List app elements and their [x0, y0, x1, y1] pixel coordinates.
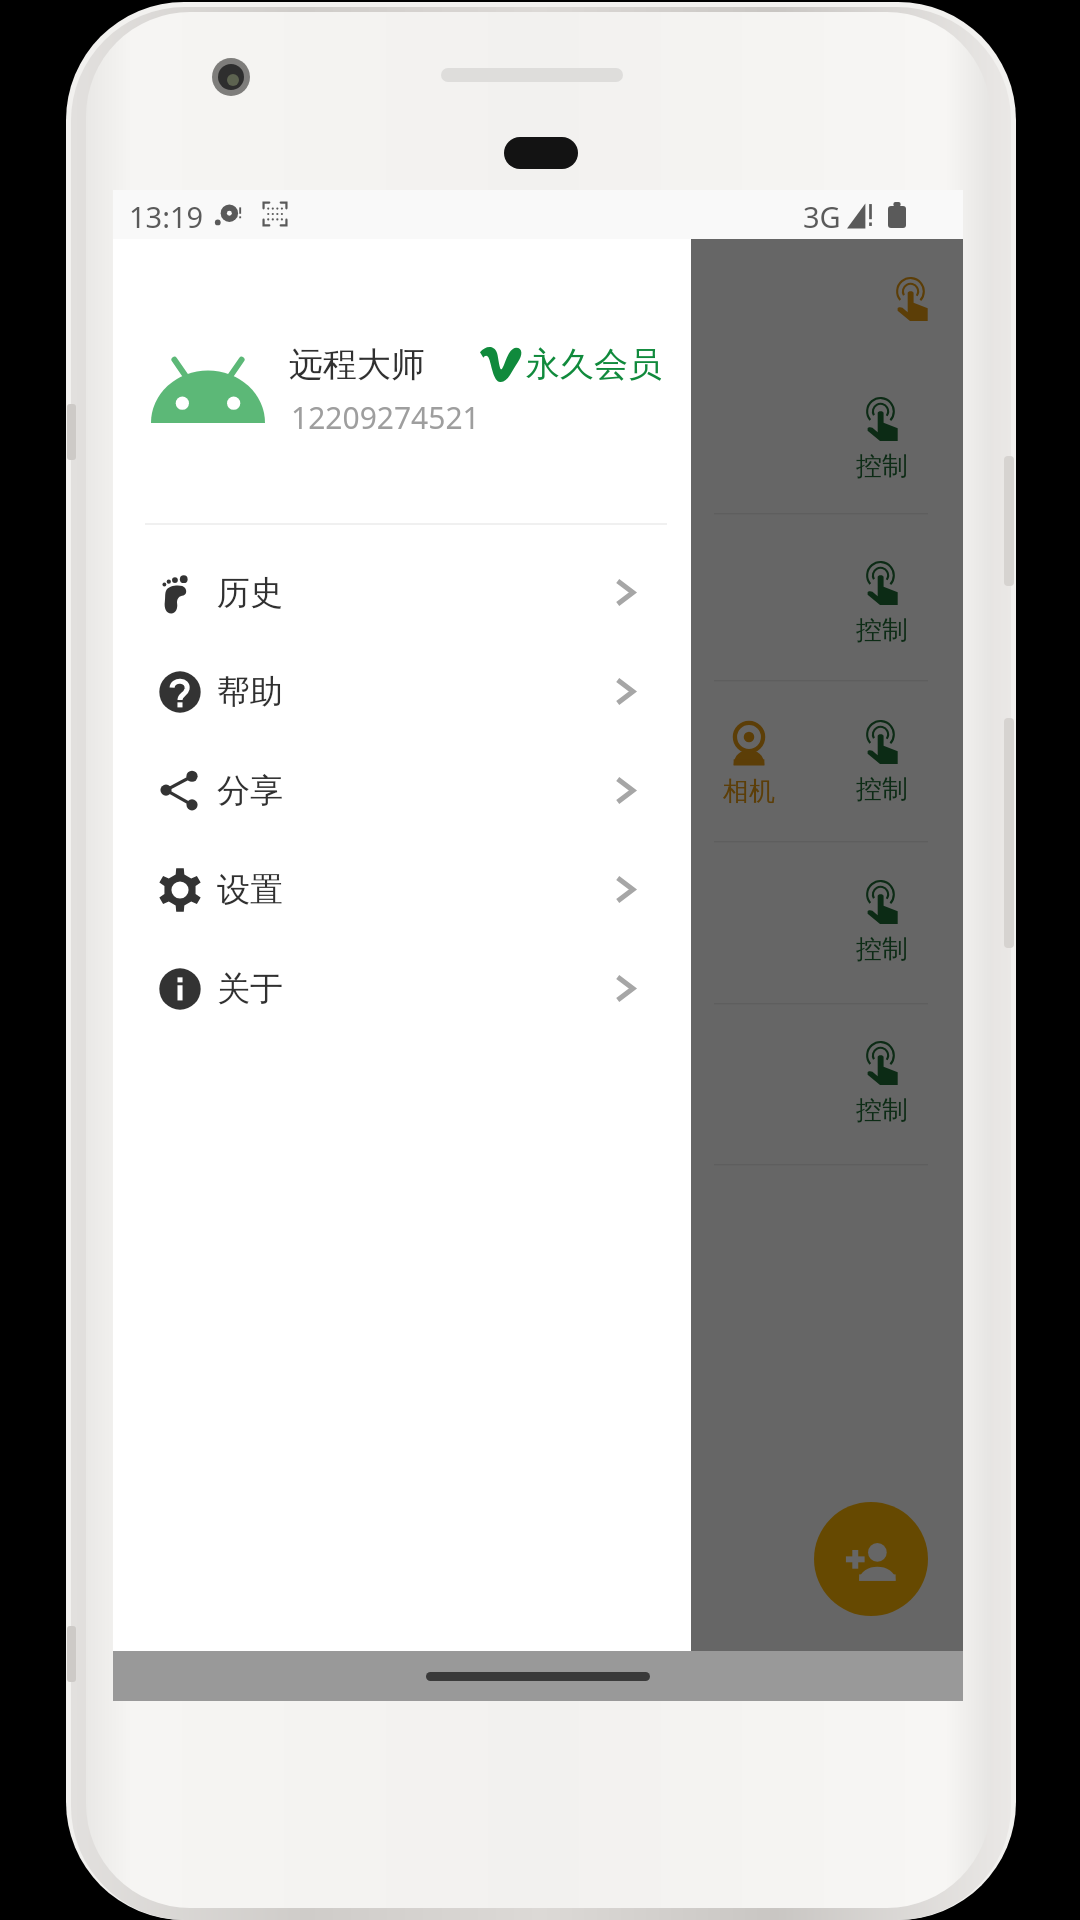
staticText: 控制	[856, 773, 908, 806]
button[interactable]: 帮助	[113, 642, 691, 741]
button[interactable]: 历史	[113, 543, 691, 642]
button[interactable]: 相机	[723, 723, 775, 808]
staticText: 相机	[723, 775, 775, 808]
staticText: 分享	[217, 770, 283, 812]
staticText: 控制	[856, 614, 908, 647]
button[interactable]: 控制	[856, 563, 908, 647]
staticText: 控制	[856, 450, 908, 483]
button[interactable]: 控制	[856, 1043, 908, 1127]
staticText: 3G	[803, 197, 841, 236]
staticText: 帮助	[217, 671, 283, 713]
staticText: 关于	[217, 968, 283, 1010]
button[interactable]: 远程控制	[897, 279, 928, 321]
button[interactable]: 分享	[113, 741, 691, 840]
button[interactable]	[113, 295, 691, 490]
button[interactable]: 设置	[113, 840, 691, 939]
staticText: 永久会员	[526, 343, 662, 386]
staticText: 控制	[856, 933, 908, 966]
button[interactable]: 控制	[856, 722, 908, 806]
staticText: 设置	[217, 869, 283, 911]
button[interactable]: 控制	[856, 882, 908, 966]
staticText: 历史	[217, 572, 283, 614]
staticText: 控制	[856, 1094, 908, 1127]
staticText: 13:19	[129, 197, 204, 236]
button[interactable]: Add device	[814, 1502, 928, 1616]
button[interactable]: 控制	[856, 399, 908, 483]
staticText: 12209274521	[291, 397, 480, 438]
staticText: 远程大师	[289, 343, 425, 386]
button[interactable]: 关于	[113, 939, 691, 1038]
